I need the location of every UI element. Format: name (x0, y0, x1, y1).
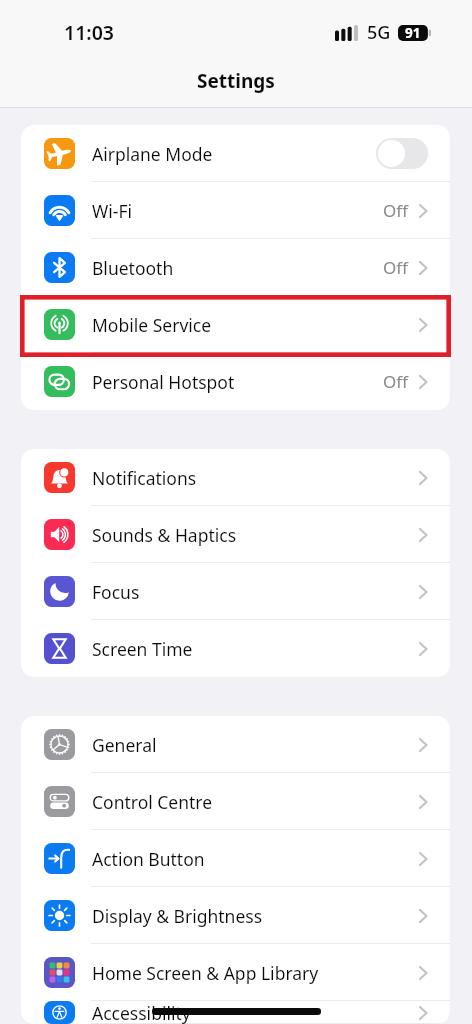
button[interactable]: Display & Brightness (21, 887, 450, 944)
staticText: Accessibility (92, 1001, 191, 1024)
staticText: Sounds & Haptics (92, 523, 237, 547)
staticText: Action Button (92, 847, 205, 871)
button[interactable]: Focus (21, 563, 450, 620)
staticText: Off (383, 370, 408, 393)
button[interactable]: Wi-Fi (21, 182, 450, 239)
staticText: Personal Hotspot (92, 370, 235, 394)
button[interactable]: General (21, 716, 450, 773)
button[interactable]: Action Button (21, 830, 450, 887)
staticText: 5G (367, 20, 391, 45)
staticText: Off (383, 199, 408, 222)
staticText: Notifications (92, 466, 197, 490)
staticText: 11:03 (64, 19, 114, 46)
staticText: Screen Time (92, 637, 193, 661)
button[interactable]: Airplane Mode (21, 125, 450, 182)
button[interactable]: Screen Time (21, 620, 450, 677)
staticText: Home Screen & App Library (92, 961, 319, 985)
staticText: Off (383, 256, 408, 279)
staticText: Wi-Fi (92, 199, 133, 223)
button[interactable]: Personal Hotspot (21, 353, 450, 410)
button[interactable]: Sounds & Haptics (21, 506, 450, 563)
button[interactable]: Control Centre (21, 773, 450, 830)
staticText: General (92, 733, 157, 757)
button[interactable]: Mobile Service (21, 296, 450, 353)
button[interactable]: Accessibility (21, 1001, 450, 1024)
staticText: Airplane Mode (92, 142, 213, 166)
staticText: Focus (92, 580, 140, 604)
staticText: Mobile Service (92, 313, 212, 337)
staticText: Settings (197, 68, 275, 94)
button[interactable]: Notifications (21, 449, 450, 506)
staticText: Control Centre (92, 790, 213, 814)
button[interactable]: Home Screen & App Library (21, 944, 450, 1001)
button[interactable]: Bluetooth (21, 239, 450, 296)
staticText: 91 (405, 24, 421, 42)
staticText: Bluetooth (92, 256, 174, 280)
button[interactable]: Airplane Mode toggle (376, 138, 428, 169)
staticText: Display & Brightness (92, 904, 263, 928)
